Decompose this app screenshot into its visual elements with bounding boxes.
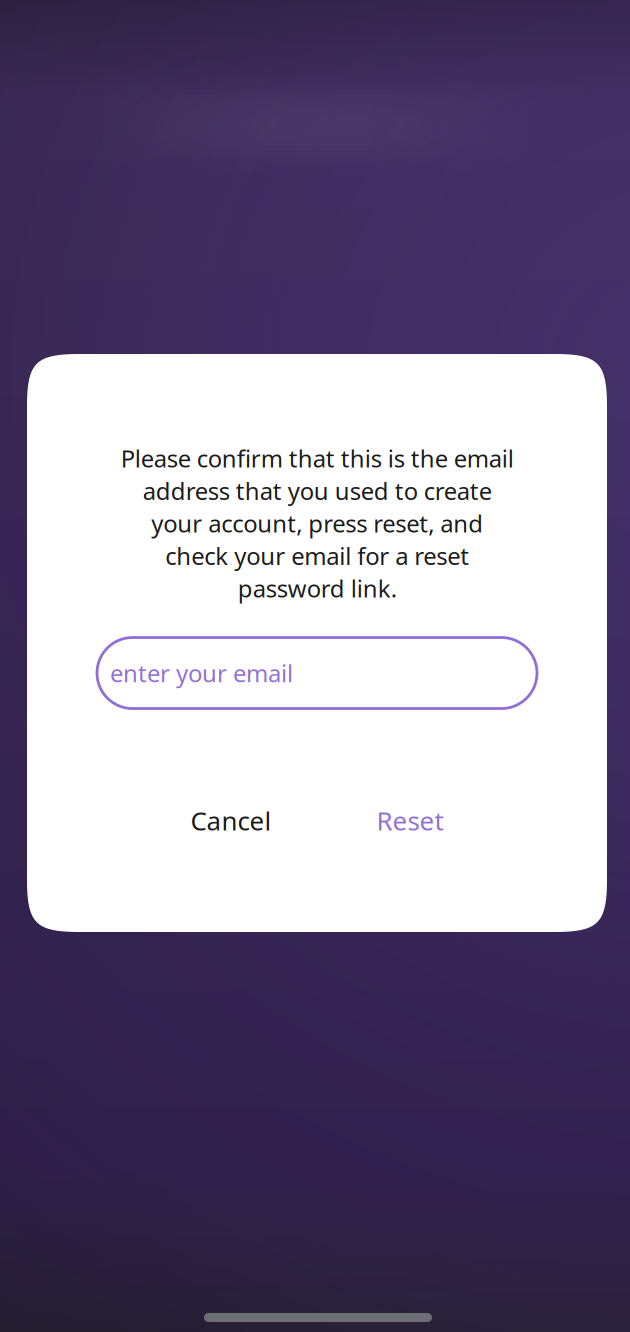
staticText: Cancel: [190, 803, 271, 838]
button[interactable]: enter your email: [97, 637, 537, 708]
button[interactable]: Reset: [366, 795, 453, 846]
staticText: enter your email: [110, 657, 293, 689]
staticText: Reset: [376, 803, 443, 838]
staticText: Please confirm that this is the email ad…: [120, 442, 513, 604]
button[interactable]: Cancel: [180, 795, 281, 846]
